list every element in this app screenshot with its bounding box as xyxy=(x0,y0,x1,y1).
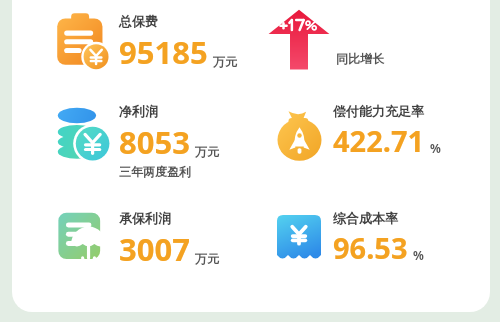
staticText: 万元 xyxy=(195,144,219,159)
button[interactable]: 同比增长 17% xyxy=(268,8,330,70)
staticText: 总保费 xyxy=(119,13,158,29)
button[interactable]: 净利润 xyxy=(119,103,219,179)
button[interactable]: 偿付能力充足率 xyxy=(333,103,441,160)
staticText: 净利润 xyxy=(119,103,158,119)
button[interactable]: 总保费 xyxy=(119,13,237,73)
staticText: 8053 xyxy=(119,121,190,163)
staticText: 三年两度盈利 xyxy=(119,164,191,179)
button[interactable]: 总保费 xyxy=(52,12,110,70)
staticText: 同比增长 xyxy=(336,51,384,66)
button[interactable]: 同比增长 xyxy=(336,51,384,66)
staticText: % xyxy=(430,140,441,156)
staticText: 96.53 xyxy=(333,228,408,267)
staticText: 95185 xyxy=(119,31,208,73)
button[interactable]: 净利润 xyxy=(52,103,110,161)
staticText: 综合成本率 xyxy=(333,210,398,226)
staticText: 万元 xyxy=(213,54,237,69)
button[interactable]: 偿付能力充足率 xyxy=(272,108,327,163)
staticText: % xyxy=(413,247,424,263)
staticText: 偿付能力充足率 xyxy=(333,103,424,119)
button[interactable]: 承保利润 xyxy=(119,210,219,270)
button[interactable]: 综合成本率 xyxy=(274,213,324,263)
button[interactable]: 综合成本率 xyxy=(333,210,424,267)
staticText: 承保利润 xyxy=(119,210,171,226)
staticText: 万元 xyxy=(195,251,219,266)
staticText: 422.71 xyxy=(333,121,425,160)
staticText: 3007 xyxy=(119,228,190,270)
button[interactable]: 承保利润 xyxy=(52,208,110,266)
